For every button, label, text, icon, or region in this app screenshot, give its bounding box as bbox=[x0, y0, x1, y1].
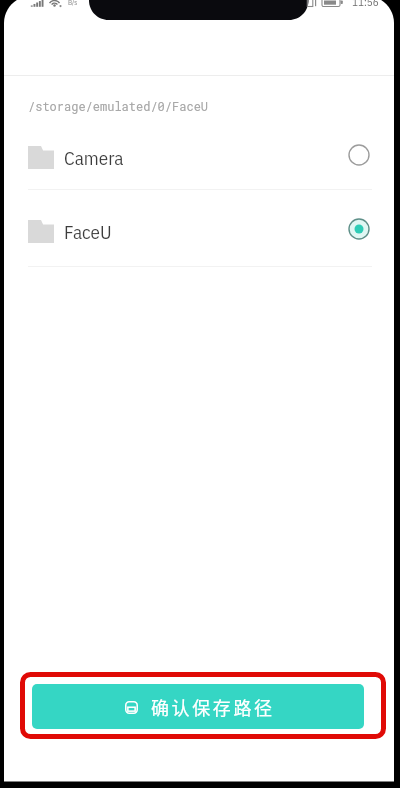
staticText: /storage/emulated/0/FaceU bbox=[28, 98, 209, 114]
button[interactable] bbox=[0, 190, 400, 266]
staticText: B/s bbox=[68, 0, 78, 7]
staticText: Camera bbox=[64, 146, 124, 171]
staticText: 11:56 bbox=[352, 0, 379, 9]
staticText: 确认保存路径 bbox=[151, 694, 275, 720]
button[interactable]: 确认保存路径 bbox=[32, 684, 364, 729]
button[interactable] bbox=[0, 113, 400, 189]
staticText: FaceU bbox=[64, 220, 112, 245]
